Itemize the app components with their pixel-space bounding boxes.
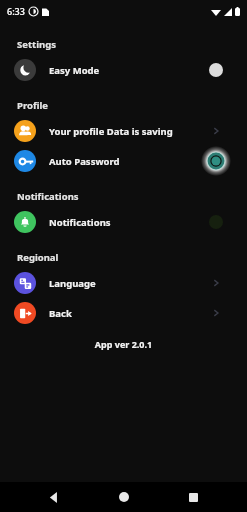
staticText: Regional [17,251,59,264]
button[interactable]: Language [0,268,247,298]
button[interactable]: Back [0,298,247,328]
button[interactable]: Recent apps [178,482,208,512]
staticText: Your profile Data is saving [49,125,199,138]
staticText: Easy Mode [49,64,199,77]
button[interactable]: Auto password toggle [199,146,233,176]
staticText: 6:33 [7,5,25,17]
staticText: Back [49,307,199,320]
button[interactable]: Toggle [206,212,226,232]
staticText: Notifications [17,190,79,203]
staticText: Auto Password [49,155,199,168]
button[interactable]: Auto Password [0,146,247,176]
button[interactable]: Home [109,482,139,512]
staticText: Profile [17,99,48,112]
button[interactable]: Back [39,482,69,512]
staticText: Language [49,277,199,290]
staticText: Settings [17,38,56,51]
staticText: Notifications [49,216,199,229]
button[interactable]: Easy Mode [0,55,247,85]
staticText: App ver 2.0.1 [0,338,247,350]
button[interactable]: Your profile Data is saving [0,116,247,146]
button[interactable]: Notifications [0,207,247,237]
button[interactable]: Toggle [206,60,226,80]
